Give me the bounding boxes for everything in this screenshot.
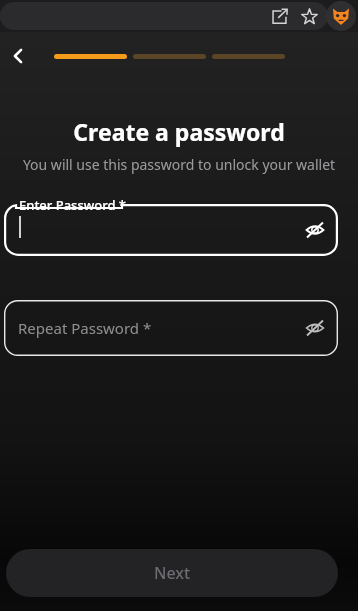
staticText: Enter Password * <box>19 196 126 214</box>
button[interactable]: Account <box>326 1 356 31</box>
staticText: You will use this password to unlock you… <box>0 155 358 174</box>
button[interactable]: Bookmark <box>295 2 323 30</box>
staticText: Repeat Password * <box>18 318 152 338</box>
button[interactable]: Show password <box>300 215 330 245</box>
button[interactable]: Repeat Password * <box>4 300 338 356</box>
button[interactable]: Share <box>265 2 293 30</box>
button[interactable]: Show password <box>300 313 330 343</box>
staticText: Create a password <box>0 116 358 147</box>
staticText: Next <box>154 562 191 584</box>
button[interactable]: Next <box>6 549 338 597</box>
button[interactable]: Enter Password * <box>4 196 338 256</box>
button[interactable]: Back <box>2 40 34 72</box>
